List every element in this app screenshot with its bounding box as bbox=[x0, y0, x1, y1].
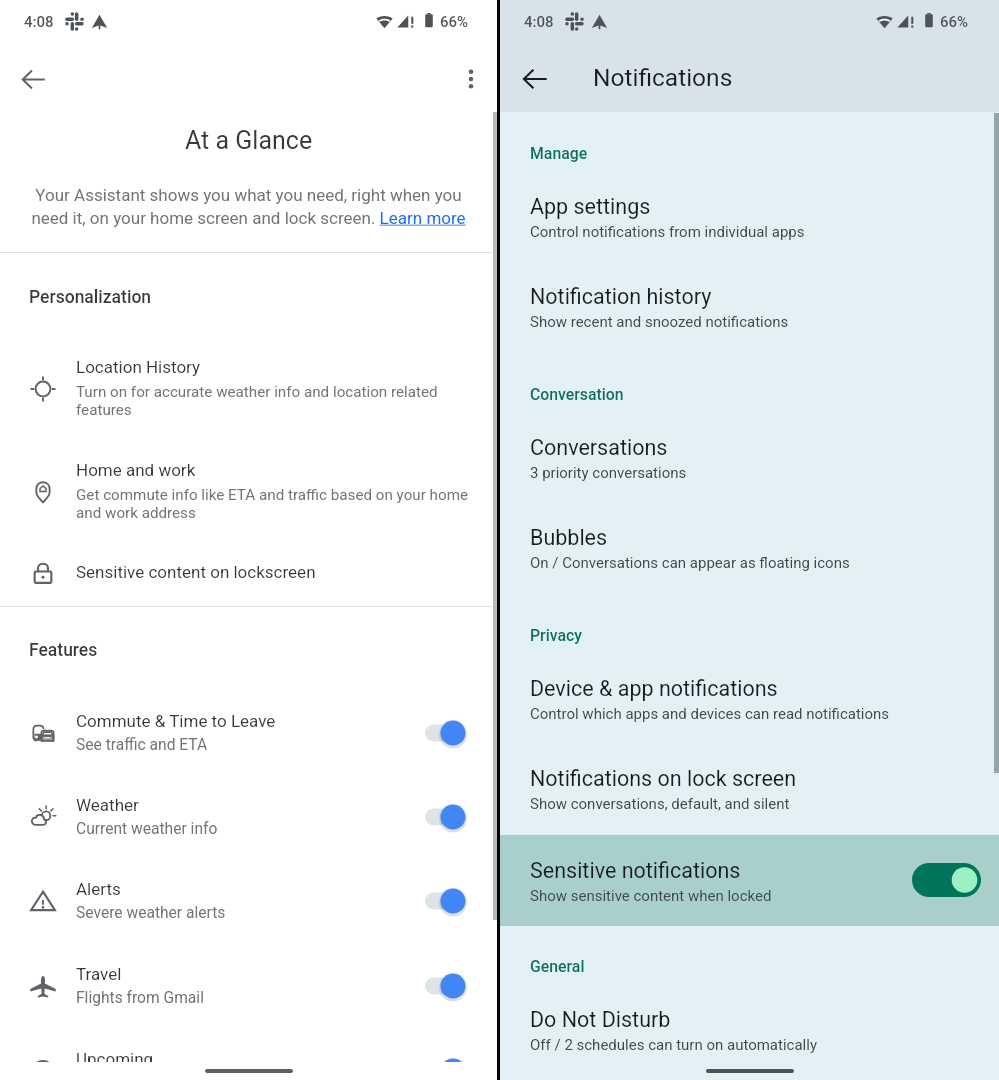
staticText: Notification history bbox=[530, 284, 712, 309]
button: Features bbox=[29, 640, 98, 661]
staticText: Privacy bbox=[530, 626, 582, 645]
staticText: 66% bbox=[940, 13, 969, 31]
staticText: 3 priority conversations bbox=[530, 464, 687, 482]
staticText: Show recent and snoozed notifications bbox=[530, 313, 789, 331]
staticText: See traffic and ETA bbox=[76, 736, 208, 754]
staticText: Home and work bbox=[76, 460, 196, 480]
staticText: Get commute info like ETA and traffic ba… bbox=[76, 486, 469, 504]
staticText: Sensitive content on lockscreen bbox=[76, 562, 316, 582]
button[interactable]: Bubbles bbox=[500, 519, 999, 587]
button[interactable]: Device & app notifications bbox=[500, 670, 999, 738]
staticText: App settings bbox=[530, 194, 651, 219]
button[interactable]: Conversations bbox=[500, 429, 999, 497]
staticText: Weather bbox=[76, 795, 139, 815]
staticText: Your Assistant shows you what you need, … bbox=[14, 185, 483, 228]
staticText: On / Conversations can appear as floatin… bbox=[530, 554, 850, 572]
button[interactable]: More options bbox=[447, 55, 495, 103]
staticText: Travel bbox=[76, 964, 122, 984]
staticText: General bbox=[530, 957, 585, 976]
staticText: Commute & Time to Leave bbox=[76, 711, 276, 731]
button[interactable]: Back bbox=[9, 55, 57, 103]
staticText: Control notifications from individual ap… bbox=[530, 223, 805, 241]
staticText: Device & app notifications bbox=[530, 676, 778, 701]
staticText: 4:08 bbox=[24, 13, 54, 31]
staticText: Conversation bbox=[530, 385, 624, 404]
staticText: Current weather info bbox=[76, 820, 218, 838]
button[interactable]: Commute & Time to Leave bbox=[0, 701, 497, 769]
staticText: Flights from Gmail bbox=[76, 989, 204, 1007]
button: Personalization bbox=[29, 287, 152, 308]
button[interactable]: Toggle Upcoming bbox=[412, 1049, 480, 1080]
staticText: Personalization bbox=[29, 287, 152, 308]
button[interactable]: Location History bbox=[0, 345, 497, 431]
staticText: Notifications bbox=[593, 63, 733, 92]
staticText: and work address bbox=[76, 504, 196, 522]
staticText: features bbox=[76, 401, 132, 419]
staticText: Show conversations, default, and silent bbox=[530, 795, 790, 813]
button[interactable]: Toggle Travel bbox=[412, 964, 480, 1008]
button[interactable]: Back bbox=[511, 55, 559, 103]
staticText: Show sensitive content when locked bbox=[530, 887, 772, 905]
button[interactable]: App settings bbox=[500, 188, 999, 256]
staticText: Features bbox=[29, 640, 98, 661]
staticText: Location History bbox=[76, 357, 201, 377]
staticText: Conversations bbox=[530, 435, 668, 460]
button[interactable]: Sensitive notifications bbox=[500, 835, 999, 926]
button[interactable]: Weather bbox=[0, 785, 497, 853]
button[interactable]: Sensitive content on lockscreen bbox=[0, 550, 497, 610]
staticText: Sensitive notifications bbox=[530, 858, 741, 883]
button[interactable]: Toggle Alerts bbox=[412, 879, 480, 923]
staticText: At a Glance bbox=[185, 126, 313, 155]
staticText: 66% bbox=[440, 13, 469, 31]
staticText: 4:08 bbox=[524, 13, 554, 31]
staticText: Alerts bbox=[76, 879, 121, 899]
staticText: Manage bbox=[530, 144, 588, 163]
button[interactable]: Travel bbox=[0, 954, 497, 1022]
button[interactable]: Toggle sensitive notifications bbox=[902, 852, 992, 908]
button[interactable]: Toggle Weather bbox=[412, 795, 480, 839]
staticText: Severe weather alerts bbox=[76, 904, 226, 922]
staticText: Off / 2 schedules can turn on automatica… bbox=[530, 1036, 817, 1054]
button[interactable]: Notifications on lock screen bbox=[500, 760, 999, 828]
staticText: Control which apps and devices can read … bbox=[530, 705, 890, 723]
button[interactable]: Alerts bbox=[0, 869, 497, 937]
button[interactable]: Home and work bbox=[0, 448, 497, 534]
staticText: Notifications on lock screen bbox=[530, 766, 797, 791]
button[interactable]: Notification history bbox=[500, 278, 999, 346]
staticText: Upcoming bbox=[76, 1049, 154, 1069]
button[interactable]: Do Not Disturb bbox=[500, 1001, 999, 1069]
staticText: Turn on for accurate weather info and lo… bbox=[76, 383, 438, 401]
staticText: Bubbles bbox=[530, 525, 608, 550]
staticText: Do Not Disturb bbox=[530, 1007, 671, 1032]
button[interactable]: Toggle Commute & Time to Leave bbox=[412, 711, 480, 755]
button[interactable]: Upcoming bbox=[0, 1039, 497, 1080]
